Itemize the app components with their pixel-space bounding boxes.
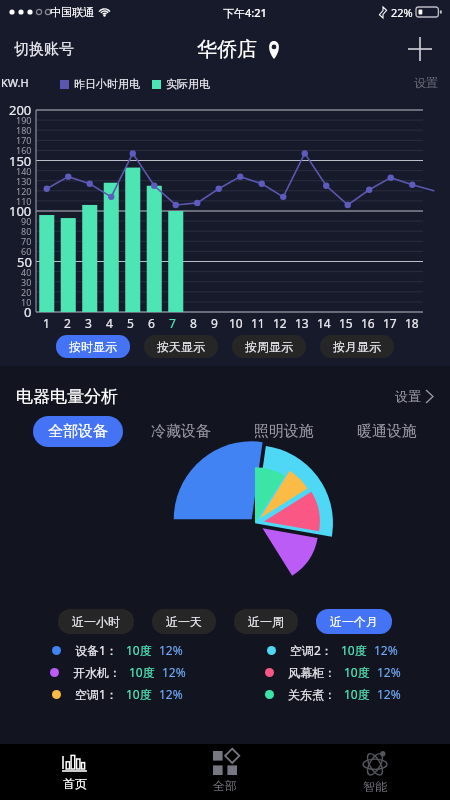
staticText: 130 bbox=[16, 175, 32, 187]
staticText: 2 bbox=[64, 315, 71, 331]
staticText: 首页 bbox=[63, 776, 87, 791]
staticText: 12 bbox=[273, 315, 287, 331]
staticText: 12% bbox=[159, 686, 183, 702]
button[interactable]: 暖通设施 bbox=[342, 416, 432, 447]
staticText: 22% bbox=[391, 5, 413, 20]
staticText: 60 bbox=[21, 245, 32, 257]
staticText: 设置 bbox=[414, 75, 438, 90]
button[interactable]: 按时显示 bbox=[56, 335, 130, 358]
staticText: KW.H bbox=[1, 75, 29, 90]
staticText: 50 bbox=[17, 253, 32, 271]
staticText: 3 bbox=[85, 315, 92, 331]
button[interactable]: 近一小时 bbox=[58, 609, 134, 634]
staticText: 电器电量分析 bbox=[16, 386, 118, 407]
button[interactable]: 设备1： bbox=[10, 642, 225, 658]
staticText: 风幕柜： bbox=[288, 665, 336, 680]
staticText: 20 bbox=[21, 286, 32, 298]
staticText: 18 bbox=[405, 315, 419, 331]
button[interactable]: 设置 bbox=[391, 384, 438, 408]
staticText: 10度 bbox=[344, 686, 370, 702]
staticText: 30 bbox=[21, 276, 32, 288]
staticText: 关东煮： bbox=[288, 687, 336, 702]
staticText: 1 bbox=[43, 315, 50, 331]
staticText: 下午4:21 bbox=[223, 5, 267, 20]
staticText: 12% bbox=[374, 642, 398, 658]
staticText: 12% bbox=[377, 686, 401, 702]
staticText: 0 bbox=[24, 303, 32, 321]
staticText: 8 bbox=[190, 315, 197, 331]
button[interactable]: 华侨店 bbox=[193, 33, 285, 66]
staticText: 华侨店 bbox=[197, 37, 257, 62]
staticText: 10度 bbox=[341, 642, 367, 658]
button[interactable]: 近一天 bbox=[152, 609, 216, 634]
staticText: 140 bbox=[16, 165, 32, 177]
button[interactable]: 全部 bbox=[150, 744, 300, 800]
staticText: 近一小时 bbox=[72, 614, 120, 629]
button[interactable]: 空调1： bbox=[10, 686, 225, 702]
button[interactable]: 关东煮： bbox=[225, 686, 440, 702]
staticText: 17 bbox=[383, 315, 397, 331]
button[interactable]: 全部设备 bbox=[33, 416, 123, 447]
button[interactable]: 风幕柜： bbox=[225, 664, 440, 680]
button[interactable]: 冷藏设备 bbox=[136, 416, 226, 447]
staticText: 10 bbox=[229, 315, 243, 331]
button[interactable]: 近一个月 bbox=[316, 609, 392, 634]
staticText: 开水机： bbox=[73, 665, 121, 680]
staticText: 近一天 bbox=[166, 614, 202, 629]
staticText: 10度 bbox=[126, 686, 152, 702]
button[interactable]: 首页 bbox=[0, 744, 150, 800]
staticText: 智能 bbox=[363, 779, 387, 794]
staticText: 近一个月 bbox=[330, 614, 378, 629]
staticText: 暖通设施 bbox=[357, 422, 417, 441]
button[interactable]: 空调2： bbox=[225, 642, 440, 658]
button[interactable]: 切换账号 bbox=[10, 36, 78, 63]
staticText: 16 bbox=[361, 315, 375, 331]
staticText: 6 bbox=[148, 315, 155, 331]
button[interactable]: 近一周 bbox=[234, 609, 298, 634]
button[interactable]: 按月显示 bbox=[320, 335, 394, 358]
staticText: 按天显示 bbox=[157, 339, 205, 354]
button[interactable]: Add bbox=[400, 29, 440, 69]
staticText: 全部 bbox=[213, 778, 237, 793]
staticText: 14 bbox=[317, 315, 331, 331]
staticText: 实际用电 bbox=[166, 77, 210, 91]
staticText: 40 bbox=[21, 266, 32, 278]
staticText: 120 bbox=[16, 185, 32, 197]
staticText: 10度 bbox=[129, 664, 155, 680]
staticText: 9 bbox=[211, 315, 218, 331]
staticText: 5 bbox=[127, 315, 134, 331]
staticText: 设置 bbox=[395, 388, 421, 404]
staticText: 空调2： bbox=[290, 642, 333, 658]
staticText: 170 bbox=[16, 134, 32, 146]
staticText: 15 bbox=[339, 315, 353, 331]
staticText: 近一周 bbox=[248, 614, 284, 629]
staticText: 70 bbox=[21, 235, 32, 247]
staticText: 13 bbox=[295, 315, 309, 331]
staticText: 80 bbox=[21, 225, 32, 237]
button[interactable]: 照明设施 bbox=[239, 416, 329, 447]
staticText: 190 bbox=[16, 114, 32, 126]
staticText: 设备1： bbox=[75, 642, 118, 658]
staticText: 全部设备 bbox=[48, 422, 108, 441]
staticText: 切换账号 bbox=[14, 40, 74, 59]
staticText: 10度 bbox=[344, 664, 370, 680]
staticText: 10度 bbox=[126, 642, 152, 658]
staticText: 中国联通 bbox=[50, 5, 94, 19]
staticText: 12% bbox=[162, 664, 186, 680]
button[interactable]: 智能 bbox=[300, 744, 450, 800]
staticText: 昨日小时用电 bbox=[74, 77, 140, 91]
staticText: 按周显示 bbox=[245, 339, 293, 354]
staticText: 200 bbox=[9, 101, 32, 119]
staticText: 12% bbox=[377, 664, 401, 680]
button[interactable]: 设置 bbox=[414, 75, 438, 90]
button[interactable]: 按天显示 bbox=[144, 335, 218, 358]
staticText: 180 bbox=[16, 124, 32, 136]
staticText: 10 bbox=[21, 296, 32, 308]
staticText: 7 bbox=[169, 315, 176, 331]
staticText: 110 bbox=[16, 195, 32, 207]
button[interactable]: 按周显示 bbox=[232, 335, 306, 358]
button[interactable]: 开水机： bbox=[10, 664, 225, 680]
staticText: 150 bbox=[9, 152, 32, 170]
staticText: 100 bbox=[9, 202, 32, 220]
staticText: 160 bbox=[16, 144, 32, 156]
